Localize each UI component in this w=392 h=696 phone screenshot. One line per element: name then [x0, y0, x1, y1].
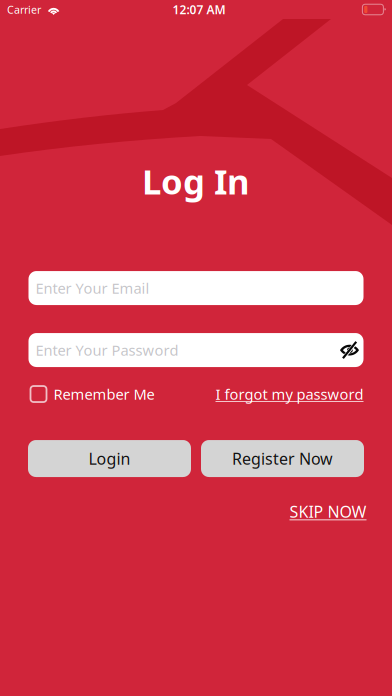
staticText: Login [88, 448, 130, 469]
staticText: Register Now [232, 448, 333, 469]
staticText: Remember Me [53, 384, 154, 404]
button[interactable]: SKIP NOW [289, 501, 366, 522]
staticText: SKIP NOW [289, 501, 366, 522]
staticText: Enter Your Email [35, 278, 149, 298]
staticText: Carrier [7, 2, 41, 17]
staticText: Enter Your Password [35, 340, 178, 360]
button[interactable]: Remember Me [30, 384, 154, 404]
button[interactable]: Login [28, 440, 191, 477]
staticText: 12:07 AM [172, 1, 225, 17]
staticText: I forgot my password [215, 384, 363, 404]
button[interactable]: I forgot my password [215, 384, 363, 404]
button[interactable]: Show password [339, 340, 359, 359]
button[interactable]: Register Now [201, 440, 364, 477]
staticText: Log In [142, 158, 250, 204]
